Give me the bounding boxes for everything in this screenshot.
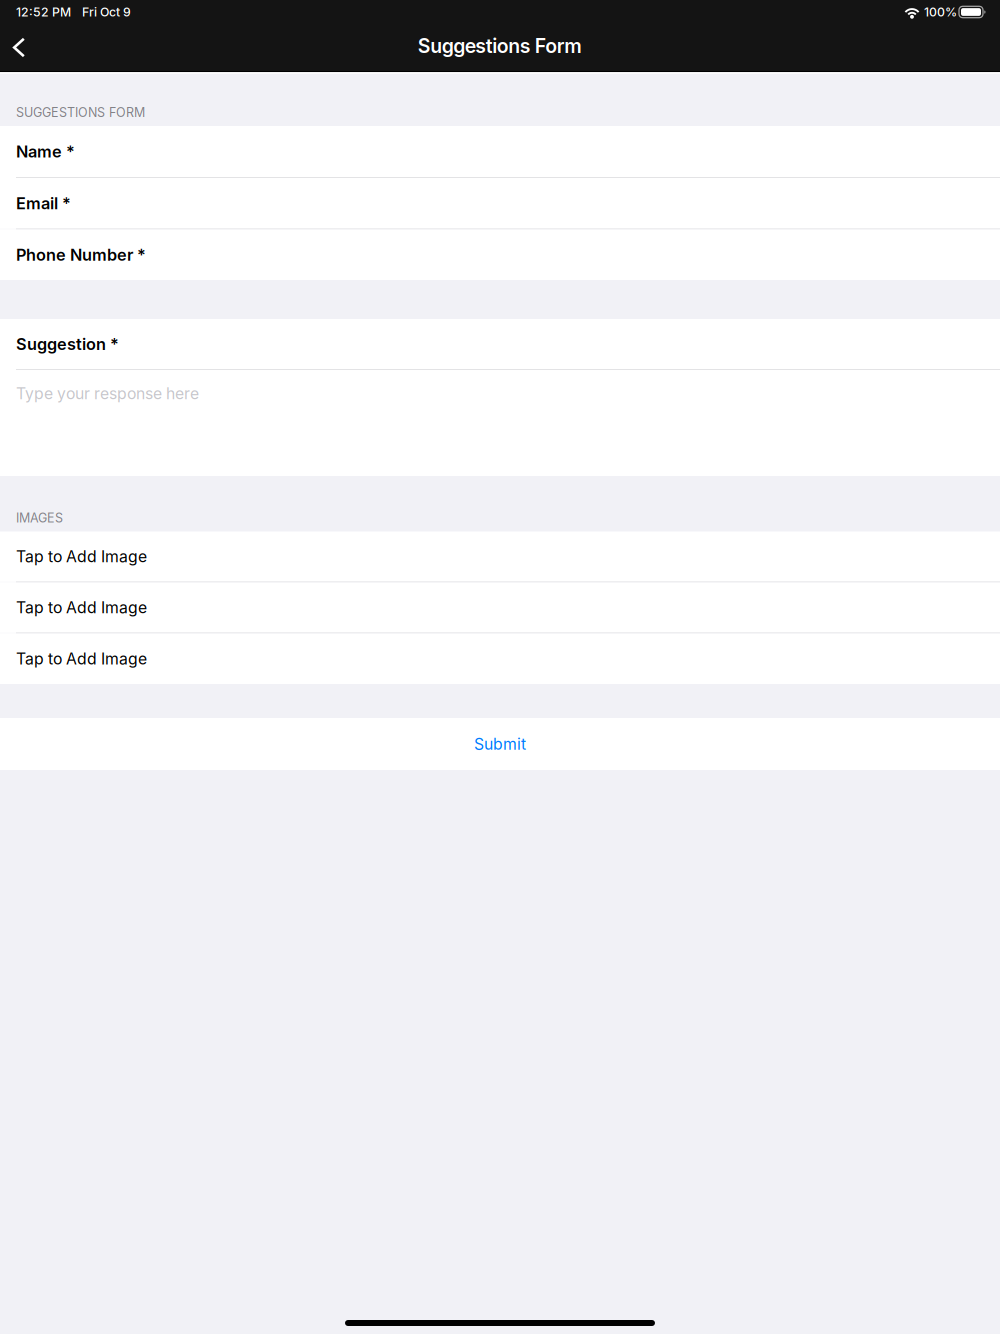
button[interactable]: Email * — [0, 178, 1000, 228]
staticText: Tap to Add Image — [16, 547, 147, 566]
staticText: Tap to Add Image — [16, 598, 147, 617]
staticText: Suggestions Form — [418, 34, 582, 58]
button[interactable]: Back — [0, 23, 38, 71]
staticText: 12:52 PM — [16, 5, 71, 19]
staticText: Submit — [474, 734, 526, 753]
staticText: Suggestion * — [16, 334, 119, 354]
button[interactable]: Type your response here — [0, 370, 1000, 476]
button[interactable]: Suggestion * — [0, 319, 1000, 369]
staticText: Fri Oct 9 — [82, 5, 131, 19]
button[interactable]: Phone Number * — [0, 229, 1000, 280]
staticText: IMAGES — [16, 510, 63, 525]
staticText: Tap to Add Image — [16, 649, 147, 668]
button[interactable]: Tap to Add Image — [0, 633, 1000, 684]
staticText: Phone Number * — [16, 245, 146, 265]
button[interactable]: Tap to Add Image — [0, 582, 1000, 632]
staticText: Email * — [16, 193, 71, 213]
button[interactable]: Tap to Add Image — [0, 531, 1000, 581]
staticText: Name * — [16, 142, 75, 161]
staticText: SUGGESTIONS FORM — [16, 105, 145, 120]
button[interactable]: Submit — [0, 718, 1000, 770]
staticText: 100% — [924, 5, 957, 19]
staticText: Type your response here — [16, 384, 199, 403]
button[interactable]: Name * — [0, 126, 1000, 177]
